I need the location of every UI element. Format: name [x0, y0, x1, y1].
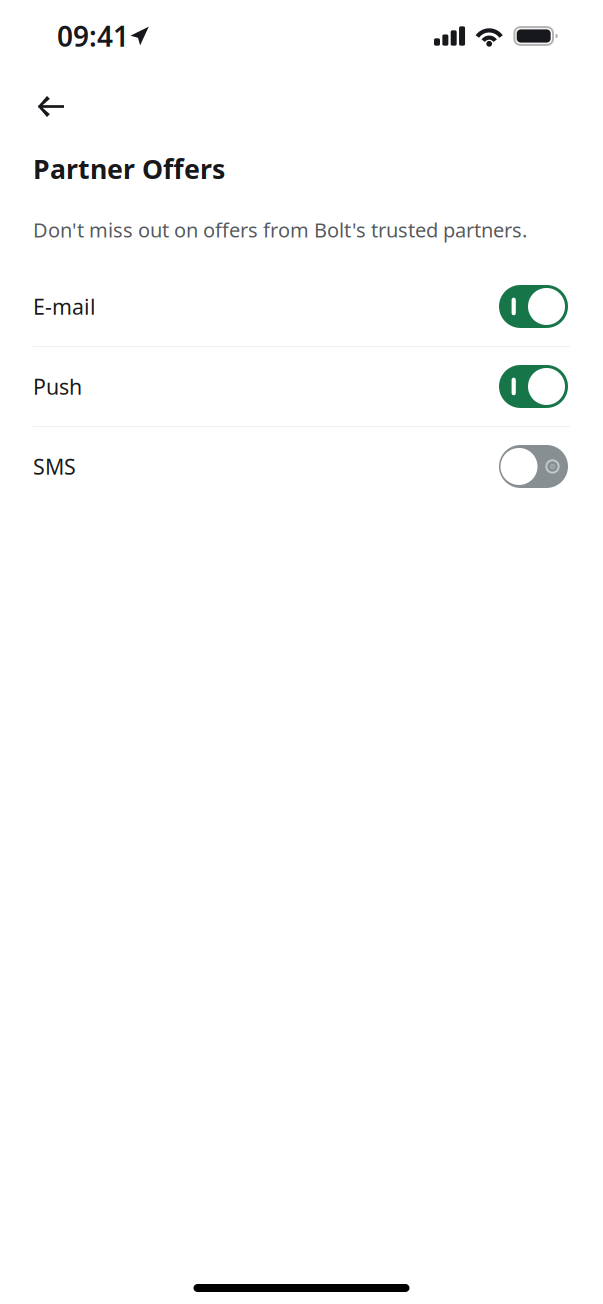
staticText: SMS [33, 452, 76, 481]
button[interactable]: Back [27, 86, 76, 127]
button[interactable]: Off [0, 427, 603, 506]
staticText: Partner Offers [33, 151, 225, 186]
staticText: Don't miss out on offers from Bolt's tru… [33, 216, 527, 243]
button[interactable]: On [0, 347, 603, 426]
staticText: E-mail [33, 292, 96, 321]
staticText: 09:41 [57, 17, 129, 55]
staticText: Push [33, 372, 82, 401]
button[interactable]: On [0, 267, 603, 346]
